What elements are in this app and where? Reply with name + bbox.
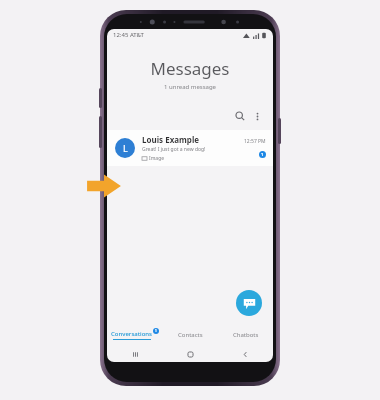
staticText: 1 bbox=[261, 152, 264, 157]
button[interactable]: Conversations bbox=[107, 324, 163, 346]
staticText: Louis Example bbox=[142, 134, 200, 145]
button[interactable]: Chatbots bbox=[218, 324, 273, 346]
button[interactable]: New conversation bbox=[236, 290, 262, 316]
staticText: 1 bbox=[155, 329, 157, 333]
button[interactable]: Back bbox=[218, 346, 273, 362]
staticText: Chatbots bbox=[233, 331, 259, 339]
staticText: L bbox=[123, 142, 128, 154]
staticText: Messages bbox=[107, 57, 273, 80]
button[interactable]: Search bbox=[231, 107, 249, 125]
staticText: 1 unread message bbox=[107, 83, 273, 91]
staticText: Image bbox=[149, 155, 165, 162]
staticText: Contacts bbox=[178, 331, 203, 339]
button[interactable]: Recents bbox=[107, 346, 163, 362]
button[interactable]: Contacts bbox=[163, 324, 218, 346]
staticText: Great! I just got a new dog! bbox=[142, 146, 206, 153]
button[interactable]: More options bbox=[249, 108, 265, 124]
staticText: 12:45 AT&T bbox=[113, 31, 144, 39]
staticText: 12:57 PM bbox=[244, 138, 266, 145]
staticText: Conversations bbox=[111, 330, 152, 338]
button[interactable]: Home bbox=[163, 346, 218, 362]
button[interactable]: L bbox=[107, 130, 273, 166]
